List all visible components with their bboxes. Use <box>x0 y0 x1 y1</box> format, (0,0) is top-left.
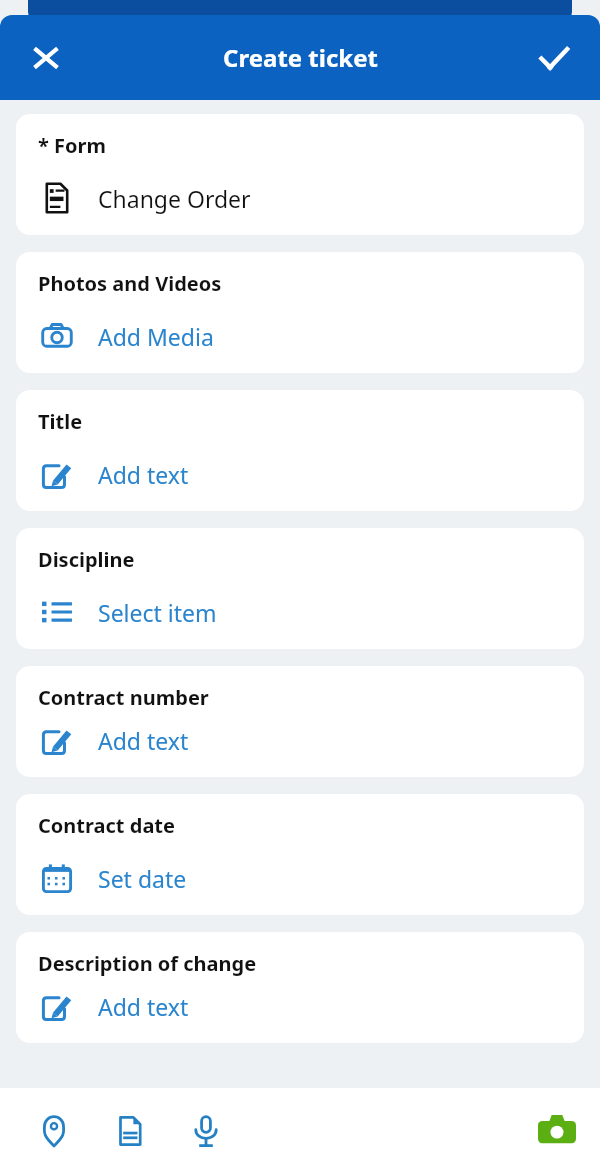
staticText: Discipline <box>38 546 135 573</box>
staticText: Add text <box>98 459 189 490</box>
staticText: Set date <box>98 863 187 894</box>
staticText: Select item <box>98 597 217 628</box>
staticText: Description of change <box>38 950 257 977</box>
button[interactable]: Contract number <box>16 666 584 777</box>
staticText: Contract number <box>38 684 209 711</box>
staticText: Title <box>38 408 83 435</box>
button[interactable]: Title <box>16 390 584 511</box>
staticText: Add Media <box>98 321 214 352</box>
staticText: Add text <box>98 991 189 1022</box>
staticText: Create ticket <box>223 41 378 74</box>
button[interactable]: Description of change <box>16 932 584 1043</box>
button[interactable]: Photos and Videos <box>16 252 584 373</box>
button[interactable]: * Form <box>16 114 584 235</box>
staticText: * Form <box>38 132 106 159</box>
button[interactable]: Close <box>16 28 76 88</box>
button[interactable]: Location <box>16 1096 92 1166</box>
staticText: Contract date <box>38 812 175 839</box>
staticText: Photos and Videos <box>38 270 222 297</box>
staticText: Add text <box>98 725 189 756</box>
button[interactable]: Save <box>524 28 584 88</box>
button[interactable]: Voice <box>168 1096 244 1166</box>
button[interactable]: Contract date <box>16 794 584 915</box>
staticText: Change Order <box>98 183 251 214</box>
button[interactable]: Camera <box>528 1102 586 1160</box>
button[interactable]: Document <box>92 1096 168 1166</box>
button[interactable]: Discipline <box>16 528 584 649</box>
